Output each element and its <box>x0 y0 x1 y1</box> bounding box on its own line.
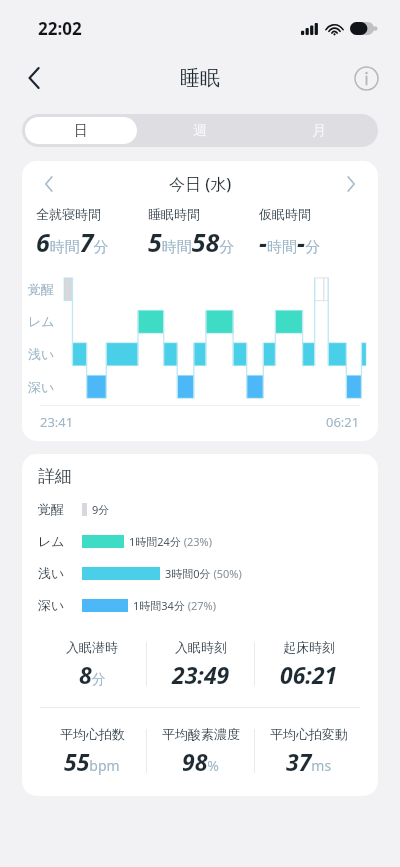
staticText: 1時間34分 (27%) <box>133 598 217 613</box>
staticText: 日 <box>74 122 88 140</box>
staticText: 23:41 <box>40 413 74 431</box>
staticText: 全就寝時間 <box>36 206 101 222</box>
staticText: 37ms <box>286 746 332 777</box>
staticText: 06:21 <box>280 659 338 690</box>
button[interactable]: Information <box>346 58 386 98</box>
staticText: 睡眠 <box>180 66 220 91</box>
staticText: -時間-分 <box>259 225 321 259</box>
staticText: 覚醒 <box>28 281 54 297</box>
staticText: レム <box>28 313 55 329</box>
staticText: 覚醒 <box>38 501 64 517</box>
staticText: 9分 <box>92 502 110 517</box>
button[interactable]: Back <box>12 56 56 100</box>
staticText: 23:49 <box>172 659 230 690</box>
staticText: 入眠時刻 <box>175 639 227 655</box>
staticText: 98% <box>182 746 219 777</box>
button[interactable]: 日 <box>25 117 137 144</box>
staticText: 55bpm <box>64 746 120 777</box>
staticText: 06:21 <box>326 413 360 431</box>
staticText: 1時間24分 (23%) <box>129 534 213 549</box>
staticText: 3時間0分 (50%) <box>165 566 242 581</box>
staticText: 平均酸素濃度 <box>162 726 240 742</box>
staticText: 月 <box>312 122 326 140</box>
staticText: レム <box>38 533 65 549</box>
staticText: 今日 (水) <box>169 173 232 195</box>
staticText: 起床時刻 <box>283 639 335 655</box>
button[interactable]: Next day <box>338 171 364 197</box>
staticText: 22:02 <box>38 17 82 40</box>
button[interactable]: 週 <box>143 117 256 144</box>
staticText: 平均心拍数 <box>60 726 125 742</box>
staticText: 詳細 <box>38 466 72 487</box>
staticText: 浅い <box>28 346 55 362</box>
staticText: 深い <box>28 379 55 395</box>
staticText: 深い <box>38 597 65 613</box>
button[interactable]: Previous day <box>36 171 62 197</box>
staticText: 8分 <box>79 659 106 690</box>
button[interactable]: 月 <box>262 117 375 144</box>
staticText: 入眠潜時 <box>66 639 118 655</box>
staticText: 5時間58分 <box>148 225 235 259</box>
staticText: 6時間7分 <box>36 225 109 259</box>
staticText: 平均心拍変動 <box>270 726 348 742</box>
staticText: 週 <box>193 122 207 140</box>
staticText: 浅い <box>38 565 65 581</box>
staticText: 仮眠時間 <box>259 206 311 222</box>
staticText: 睡眠時間 <box>148 206 200 222</box>
